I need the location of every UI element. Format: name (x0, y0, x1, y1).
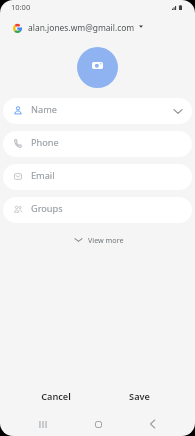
button[interactable]: alan.jones.wm@gmail.com (0, 18, 195, 38)
button[interactable]: Recents (33, 414, 53, 434)
button[interactable]: Groups (3, 197, 192, 223)
button[interactable]: Name (3, 98, 192, 124)
staticText: Save (129, 390, 150, 403)
staticText: Groups (31, 202, 63, 215)
button[interactable]: Email (3, 164, 192, 190)
button[interactable]: View more (67, 232, 132, 248)
button[interactable]: Add photo (77, 47, 118, 88)
button[interactable]: Back (142, 414, 162, 434)
button[interactable]: Home (88, 414, 108, 434)
staticText: 10:00 (11, 2, 31, 12)
staticText: alan.jones.wm@gmail.com (28, 22, 135, 34)
staticText: Phone (31, 136, 59, 149)
staticText: Name (31, 103, 57, 116)
button[interactable]: Cancel (14, 384, 97, 408)
staticText: Cancel (41, 390, 71, 403)
button[interactable]: Save (97, 384, 181, 408)
staticText: View more (88, 235, 124, 245)
staticText: Email (31, 169, 55, 182)
button[interactable]: Phone (3, 131, 192, 157)
